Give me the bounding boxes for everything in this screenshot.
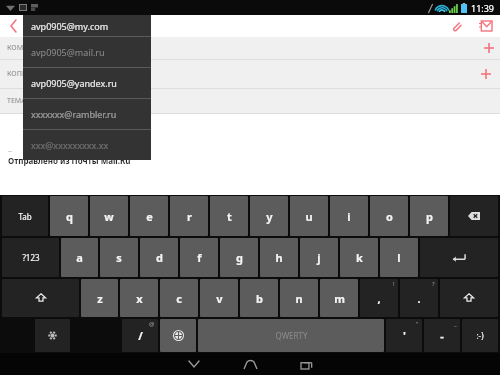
button[interactable]: Attach: [442, 15, 470, 37]
button[interactable]: g: [220, 238, 258, 277]
staticText: QWERTY: [275, 330, 308, 341]
staticText: .: [417, 291, 421, 306]
button[interactable]: avp0905@mail.ru: [23, 37, 151, 67]
button[interactable]: q: [50, 196, 88, 236]
button[interactable]: /: [122, 319, 158, 352]
button[interactable]: z: [81, 279, 118, 317]
button[interactable]: j: [300, 238, 338, 277]
staticText: 11:39: [471, 2, 495, 14]
button[interactable]: КОМУ: [0, 37, 500, 59]
button[interactable]: globe: [160, 319, 196, 352]
staticText: t: [227, 209, 232, 224]
button[interactable]: --: [0, 114, 500, 195]
button[interactable]: .: [400, 279, 438, 317]
button[interactable]: КОПИЯ: [0, 60, 500, 88]
staticText: d: [156, 250, 163, 265]
staticText: avp0905@my.com: [31, 20, 109, 32]
staticText: xxxxxxx@rambler.ru: [31, 108, 117, 120]
staticText: q: [66, 209, 73, 224]
staticText: avp0905@mail.ru: [30, 19, 122, 34]
staticText: w: [104, 209, 114, 224]
staticText: КОМУ: [7, 43, 28, 53]
button[interactable]: shift: [440, 279, 498, 317]
staticText: x: [136, 291, 143, 306]
staticText: _: [454, 320, 457, 328]
button[interactable]: l: [380, 238, 418, 277]
button[interactable]: settings: [35, 319, 70, 352]
button[interactable]: h: [260, 238, 298, 277]
staticText: b: [256, 291, 263, 306]
button[interactable]: ?123: [2, 238, 59, 277]
staticText: :-): [476, 330, 484, 341]
button[interactable]: Recents: [287, 353, 325, 375]
button[interactable]: n: [280, 279, 318, 317]
staticText: z: [97, 291, 103, 306]
staticText: ?123: [22, 252, 40, 263]
staticText: КОПИЯ: [7, 69, 32, 79]
button[interactable]: p: [410, 196, 448, 236]
button[interactable]: t: [210, 196, 248, 236]
staticText: l: [397, 250, 401, 265]
button[interactable]: a: [61, 238, 98, 277]
staticText: e: [146, 209, 153, 224]
button[interactable]: ТЕМА: [0, 89, 500, 113]
button[interactable]: avp0905@yandex.ru: [23, 68, 151, 98]
staticText: avp0905@mail.ru: [31, 46, 105, 58]
staticText: u: [305, 209, 313, 224]
button[interactable]: Tab: [2, 196, 48, 236]
staticText: c: [176, 291, 182, 306]
button[interactable]: r: [170, 196, 208, 236]
button[interactable]: avp0905@my.com: [23, 15, 151, 36]
button[interactable]: Add recipient: [478, 37, 500, 59]
staticText: h: [275, 250, 283, 265]
staticText: /: [138, 328, 143, 343]
staticText: --: [8, 147, 12, 155]
button[interactable]: v: [200, 279, 238, 317]
staticText: y: [266, 209, 273, 224]
button[interactable]: k: [340, 238, 378, 277]
staticText: avp0905@yandex.ru: [31, 77, 117, 89]
button[interactable]: u: [290, 196, 328, 236]
button[interactable]: shift: [2, 279, 79, 317]
button[interactable]: xxx@xxxxxxxxx.xx: [23, 130, 151, 160]
staticText: o: [386, 209, 393, 224]
button[interactable]: b: [240, 279, 278, 317]
button[interactable]: w: [90, 196, 128, 236]
staticText: Отправлено из Почты Mail.Ru: [8, 155, 131, 166]
button[interactable]: d: [140, 238, 178, 277]
staticText: ТЕМА: [7, 96, 26, 106]
button[interactable]: Send: [470, 15, 500, 37]
button[interactable]: e: [130, 196, 168, 236]
button[interactable]: c: [160, 279, 198, 317]
button[interactable]: i: [330, 196, 368, 236]
staticText: g: [236, 250, 243, 265]
button[interactable]: m: [320, 279, 358, 317]
staticText: f: [197, 250, 202, 265]
button[interactable]: Home: [231, 353, 269, 375]
button[interactable]: Back: [0, 15, 26, 37]
button[interactable]: :-): [462, 319, 498, 352]
button[interactable]: QWERTY: [198, 319, 384, 352]
button[interactable]: -: [424, 319, 460, 352]
staticText: !: [393, 280, 395, 288]
button[interactable]: avp0905@mail.ru: [30, 19, 131, 34]
button[interactable]: o: [370, 196, 408, 236]
button[interactable]: x: [120, 279, 158, 317]
staticText: -: [440, 328, 444, 343]
staticText: s: [116, 250, 122, 265]
staticText: ?: [432, 280, 435, 288]
button[interactable]: xxxxxxx@rambler.ru: [23, 99, 151, 129]
button[interactable]: bksp: [450, 196, 498, 236]
button[interactable]: Hide keyboard: [175, 353, 213, 375]
button[interactable]: s: [100, 238, 138, 277]
staticText: ": [416, 320, 419, 328]
staticText: xxx@xxxxxxxxx.xx: [31, 139, 109, 151]
staticText: r: [187, 209, 192, 224]
button[interactable]: enter: [420, 238, 498, 277]
button[interactable]: ': [386, 319, 422, 352]
button[interactable]: Add recipient: [472, 60, 500, 88]
button[interactable]: f: [180, 238, 218, 277]
button[interactable]: y: [250, 196, 288, 236]
staticText: v: [216, 291, 223, 306]
button[interactable]: ,: [360, 279, 398, 317]
